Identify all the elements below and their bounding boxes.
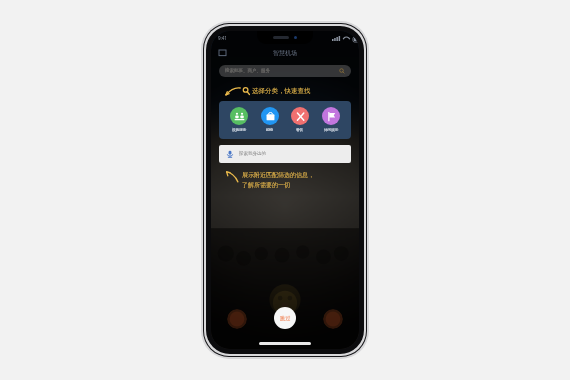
button[interactable]: 探索我身边的 — [219, 145, 351, 163]
button[interactable]: 购物 — [259, 107, 281, 133]
staticText: 休闲娱乐 — [324, 128, 339, 133]
button[interactable]: Home — [227, 309, 247, 329]
button[interactable]: 跳过 — [274, 307, 296, 329]
button[interactable]: 休闲娱乐 — [320, 107, 342, 133]
button[interactable]: 设施服务 — [228, 107, 250, 133]
staticText: 选择分类，快速查找 — [252, 87, 311, 95]
staticText: 设施服务 — [232, 128, 247, 133]
staticText: 搜索航班、商户、服务 — [225, 68, 270, 74]
staticText: 智慧机场 — [273, 49, 297, 57]
button[interactable]: 搜索航班、商户、服务 — [219, 65, 351, 77]
button[interactable]: Menu — [219, 50, 226, 57]
staticText: 展示附近匹配筛选的信息， — [242, 171, 314, 179]
staticText: 了解所需要的一切 — [242, 181, 290, 189]
staticText: 9:41 — [218, 35, 227, 41]
staticText: 探索我身边的 — [239, 151, 266, 157]
staticText: 餐饮 — [296, 128, 304, 133]
staticText: 购物 — [266, 128, 274, 133]
staticText: 跳过 — [280, 315, 291, 322]
button[interactable]: 餐饮 — [289, 107, 311, 133]
button[interactable]: Profile — [323, 309, 343, 329]
